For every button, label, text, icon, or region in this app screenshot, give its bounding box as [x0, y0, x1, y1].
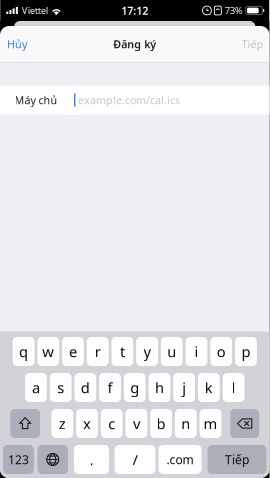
button[interactable]: b — [150, 409, 172, 438]
button[interactable]: a — [25, 373, 47, 402]
button[interactable]: f — [99, 373, 121, 402]
staticText: z — [59, 414, 66, 433]
button[interactable]: / — [114, 445, 155, 474]
button[interactable]: Shift — [10, 409, 40, 438]
staticText: x — [83, 414, 91, 433]
staticText: n — [181, 414, 190, 433]
button[interactable]: o — [210, 337, 232, 366]
button[interactable]: u — [161, 337, 183, 366]
staticText: / — [132, 450, 137, 469]
button[interactable]: k — [198, 373, 220, 402]
staticText: a — [32, 378, 40, 397]
staticText: l — [231, 378, 235, 397]
staticText: c — [108, 414, 115, 433]
staticText: u — [167, 342, 176, 361]
staticText: v — [133, 414, 140, 433]
staticText: . — [89, 450, 93, 469]
button[interactable]: l — [223, 373, 244, 402]
button[interactable]: w — [37, 337, 59, 366]
staticText: g — [130, 378, 139, 397]
staticText: Hủy — [7, 37, 27, 51]
button[interactable]: m — [200, 409, 221, 438]
button[interactable]: y — [136, 337, 158, 366]
button[interactable]: c — [101, 409, 123, 438]
staticText: t — [120, 342, 125, 361]
button[interactable]: Next keyboard — [37, 445, 68, 474]
button[interactable]: g — [124, 373, 146, 402]
staticText: example.com/cal.ics — [78, 93, 180, 107]
button[interactable]: Tiếp — [235, 26, 269, 62]
staticText: 17:12 — [121, 3, 148, 18]
button[interactable]: h — [149, 373, 170, 402]
staticText: d — [81, 378, 90, 397]
staticText: m — [203, 414, 217, 433]
button[interactable]: n — [175, 409, 197, 438]
staticText: q — [19, 342, 28, 361]
staticText: y — [144, 342, 151, 361]
button[interactable]: d — [74, 373, 96, 402]
button[interactable]: s — [50, 373, 71, 402]
staticText: Máy chủ — [14, 93, 57, 107]
button[interactable]: Delete — [230, 409, 259, 438]
staticText: .com — [166, 451, 193, 467]
button[interactable]: . — [74, 445, 109, 474]
button[interactable]: Hủy — [0, 26, 34, 62]
staticText: k — [205, 378, 213, 397]
staticText: r — [95, 342, 101, 361]
button[interactable]: .com — [158, 445, 201, 474]
button[interactable]: r — [87, 337, 109, 366]
button[interactable]: x — [76, 409, 98, 438]
staticText: j — [182, 378, 186, 397]
button[interactable]: e — [62, 337, 84, 366]
button[interactable]: q — [13, 337, 34, 366]
staticText: b — [157, 414, 166, 433]
button[interactable]: t — [111, 337, 133, 366]
staticText: s — [57, 378, 64, 397]
button[interactable]: v — [125, 409, 147, 438]
button[interactable]: p — [235, 337, 257, 366]
button[interactable]: z — [51, 409, 73, 438]
staticText: Tiếp — [241, 37, 263, 51]
staticText: o — [217, 342, 226, 361]
staticText: f — [107, 378, 112, 397]
staticText: 123 — [8, 451, 29, 467]
staticText: Đăng ký — [113, 37, 156, 51]
staticText: Viettel — [22, 4, 48, 17]
staticText: i — [194, 342, 198, 361]
staticText: p — [241, 342, 250, 361]
staticText: 73% — [225, 4, 243, 17]
staticText: h — [155, 378, 164, 397]
button[interactable]: j — [173, 373, 195, 402]
staticText: Tiếp — [225, 451, 249, 467]
button[interactable]: i — [186, 337, 207, 366]
staticText: w — [42, 342, 54, 361]
staticText: e — [69, 342, 77, 361]
button[interactable]: 123 — [3, 445, 34, 474]
button[interactable]: Tiếp — [207, 445, 266, 474]
